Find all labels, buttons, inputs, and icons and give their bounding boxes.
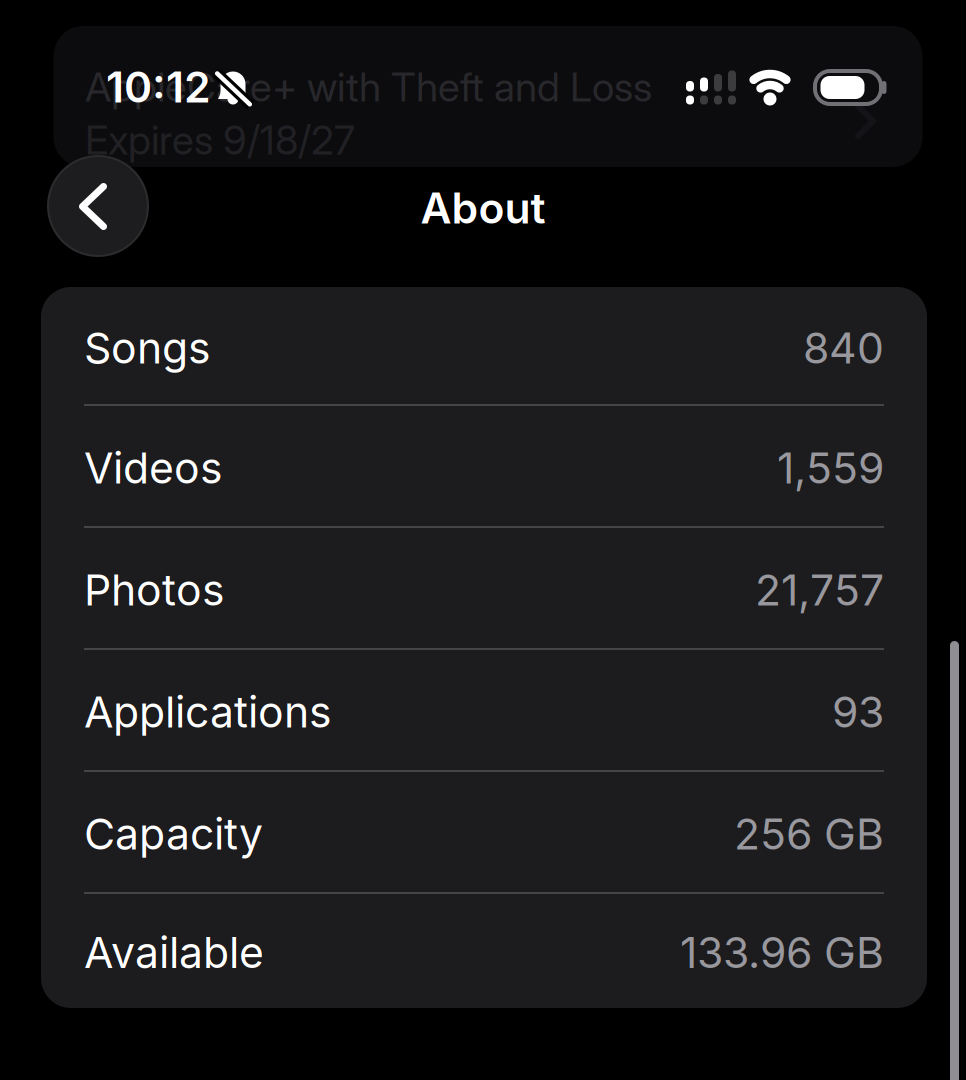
staticText: Capacity [84, 809, 263, 859]
staticText: 256 GB [734, 809, 884, 859]
staticText: About [420, 183, 545, 233]
button[interactable] [48, 156, 148, 256]
staticText: Applications [84, 687, 332, 737]
staticText: 133.96 GB [680, 927, 884, 978]
button[interactable]: Videos [84, 407, 884, 529]
staticText: AppleCare+ with Theft and Loss [85, 63, 652, 111]
staticText: 93 [832, 687, 884, 737]
staticText: 10:12 [106, 62, 211, 112]
staticText: Photos [84, 565, 225, 615]
staticText: Videos [84, 443, 223, 493]
button[interactable]: Capacity [84, 773, 884, 895]
staticText: Available [84, 927, 264, 978]
staticText: 1,559 [777, 443, 884, 493]
button[interactable]: Photos [84, 529, 884, 651]
staticText: 21,757 [755, 565, 884, 615]
button[interactable]: Available [84, 895, 884, 1010]
staticText: Songs [84, 323, 211, 373]
staticText: Expires 9/18/27 [85, 116, 355, 164]
button[interactable]: Applications [84, 651, 884, 773]
staticText: 840 [803, 323, 884, 373]
button[interactable]: Songs [84, 289, 884, 407]
